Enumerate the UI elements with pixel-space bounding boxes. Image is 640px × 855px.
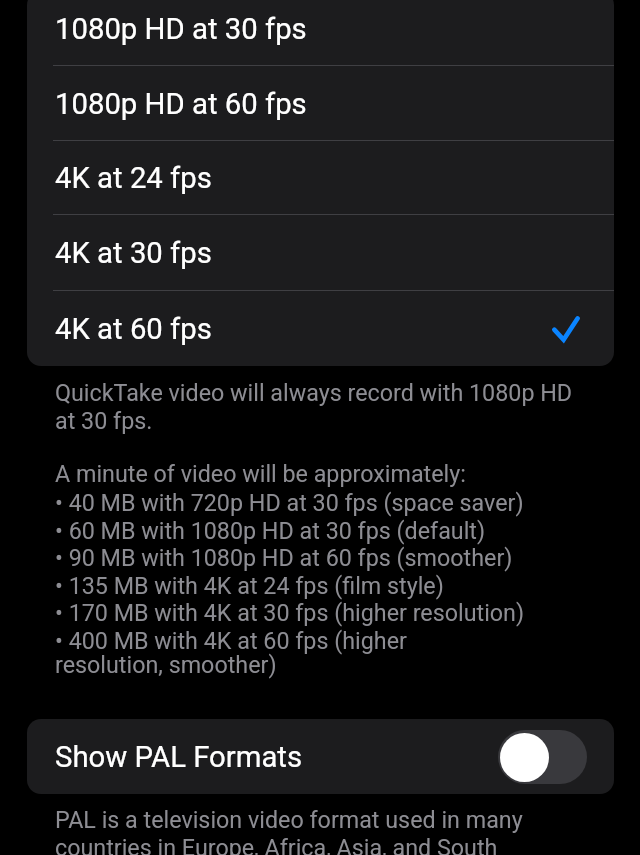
staticText: • 400 MB with 4K at 60 fps (higher: [55, 627, 640, 655]
staticText: QuickTake video will always record with …: [55, 379, 640, 407]
other: Selected: [552, 316, 580, 342]
staticText: A minute of video will be approximately:: [55, 460, 640, 488]
staticText: • 170 MB with 4K at 30 fps (higher resol…: [55, 599, 640, 627]
staticText: Show PAL Formats: [55, 740, 303, 774]
button[interactable]: 1080p HD at 30 fps: [27, 0, 614, 66]
button[interactable]: 4K at 30 fps: [27, 215, 614, 291]
staticText: at 30 fps.: [55, 407, 640, 435]
button[interactable]: Show PAL Formats: [27, 719, 614, 794]
staticText: 1080p HD at 60 fps: [55, 87, 307, 121]
staticText: 4K at 30 fps: [55, 236, 212, 270]
button[interactable]: 4K at 60 fps: [27, 291, 614, 366]
staticText: • 90 MB with 1080p HD at 60 fps (smoothe…: [55, 544, 640, 572]
staticText: PAL is a television video format used in…: [55, 806, 640, 834]
other: Show PAL Formats toggle, off: [498, 730, 587, 784]
staticText: • 60 MB with 1080p HD at 30 fps (default…: [55, 517, 640, 545]
staticText: 4K at 60 fps: [55, 312, 212, 346]
button[interactable]: 4K at 24 fps: [27, 141, 614, 215]
staticText: resolution, smoother): [55, 651, 640, 679]
staticText: 4K at 24 fps: [55, 161, 212, 195]
staticText: countries in Europe, Africa, Asia, and S…: [55, 834, 640, 855]
staticText: • 135 MB with 4K at 24 fps (film style): [55, 572, 640, 600]
button[interactable]: 1080p HD at 60 fps: [27, 66, 614, 141]
staticText: 1080p HD at 30 fps: [55, 12, 307, 46]
staticText: • 40 MB with 720p HD at 30 fps (space sa…: [55, 489, 640, 517]
